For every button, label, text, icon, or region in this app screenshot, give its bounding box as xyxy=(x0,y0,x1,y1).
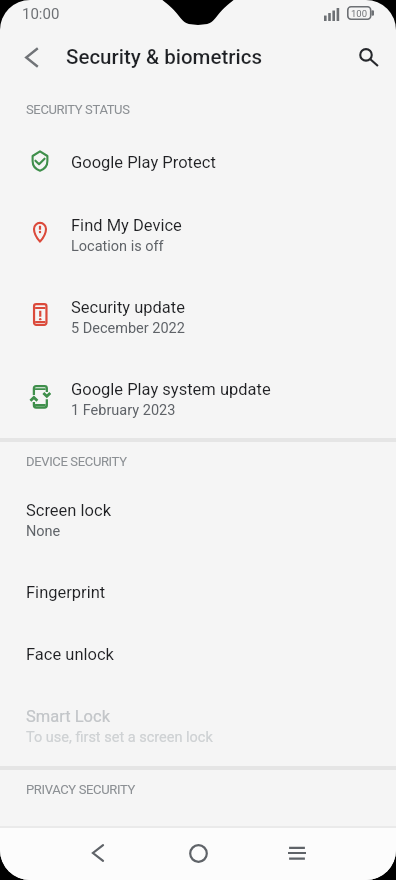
button[interactable]: Back xyxy=(74,829,122,877)
staticText: Google Play system update xyxy=(71,380,271,399)
button[interactable]: Back xyxy=(8,33,56,81)
button[interactable]: Google Play Protect xyxy=(0,130,396,192)
button[interactable]: Find My Device xyxy=(0,192,396,274)
staticText: Fingerprint xyxy=(26,583,106,602)
staticText: None xyxy=(26,523,61,540)
staticText: Find My Device xyxy=(71,216,182,235)
staticText: Face unlock xyxy=(26,645,114,664)
staticText: 1 February 2023 xyxy=(71,402,176,419)
staticText: Location is off xyxy=(71,238,164,255)
staticText: 5 December 2022 xyxy=(71,320,185,337)
button[interactable]: Security update xyxy=(0,274,396,356)
staticText: Security update xyxy=(71,298,185,317)
button[interactable]: Search xyxy=(345,33,393,81)
staticText: Smart Lock xyxy=(26,707,111,726)
button[interactable]: Fingerprint xyxy=(0,560,396,622)
staticText: 100 xyxy=(351,8,368,19)
staticText: SECURITY STATUS xyxy=(26,102,130,117)
staticText: To use, first set a screen lock xyxy=(26,729,213,746)
staticText: Screen lock xyxy=(26,501,111,520)
button[interactable]: Recent apps xyxy=(273,829,321,877)
button[interactable]: Screen lock xyxy=(0,478,396,560)
button[interactable]: Google Play system update xyxy=(0,356,396,438)
button[interactable]: Home xyxy=(174,829,222,877)
staticText: Security & biometrics xyxy=(66,45,262,69)
button[interactable]: Face unlock xyxy=(0,622,396,684)
staticText: DEVICE SECURITY xyxy=(26,454,127,469)
staticText: Google Play Protect xyxy=(71,153,216,172)
staticText: 10:00 xyxy=(22,5,60,23)
staticText: PRIVACY SECURITY xyxy=(26,782,135,797)
button[interactable]: Smart Lock xyxy=(0,684,396,766)
